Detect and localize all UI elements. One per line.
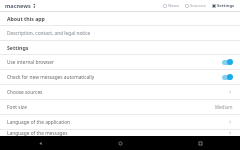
button[interactable]: Back — [0, 136, 80, 150]
button[interactable]: Use internal browser — [0, 55, 240, 69]
button[interactable]: Language of the messages — [0, 130, 240, 136]
staticText: Language of the application — [7, 119, 228, 126]
staticText: Settings — [217, 3, 235, 9]
button[interactable]: Description, contact, and legal notice — [0, 26, 240, 40]
staticText: macnews — [5, 2, 31, 9]
button[interactable]: Language of the application — [0, 115, 240, 129]
staticText: Language of the messages — [7, 130, 228, 136]
button[interactable]: News — [162, 2, 180, 10]
staticText: Sources — [190, 3, 206, 9]
staticText: Medium — [215, 104, 233, 110]
button[interactable]: Home — [80, 136, 160, 150]
button[interactable]: macnews home — [4, 1, 38, 10]
button[interactable]: Recent apps — [160, 136, 240, 150]
button[interactable]: Sources — [184, 2, 207, 10]
staticText: Settings — [7, 44, 29, 51]
staticText: Description, contact, and legal notice — [7, 30, 91, 37]
button[interactable]: Font size — [0, 100, 240, 114]
staticText: News — [168, 3, 179, 9]
staticText: Font size — [7, 104, 215, 111]
button[interactable]: Choose sources — [0, 85, 240, 99]
staticText: About this app — [7, 15, 45, 22]
staticText: Choose sources — [7, 89, 228, 96]
staticText: Check for new messages automatically — [7, 74, 222, 81]
button[interactable]: Check for new messages automatically — [0, 70, 240, 84]
staticText: Use internal browser — [7, 59, 222, 66]
button[interactable]: Settings — [211, 2, 236, 10]
